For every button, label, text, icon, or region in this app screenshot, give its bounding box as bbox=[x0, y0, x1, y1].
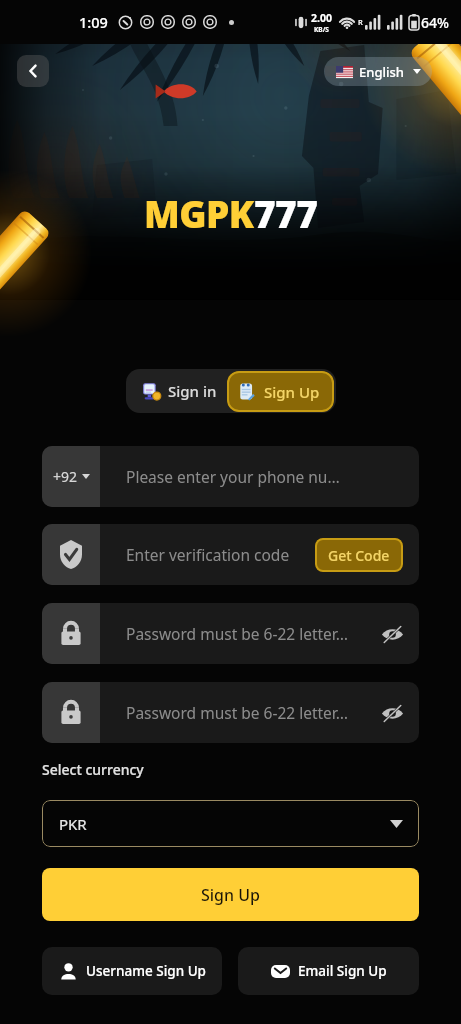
staticText: +92 bbox=[53, 467, 78, 486]
button[interactable]: PKR bbox=[59, 800, 403, 847]
button[interactable]: English bbox=[336, 57, 421, 86]
staticText: Sign Up bbox=[201, 884, 260, 906]
staticText: MGPK bbox=[144, 188, 254, 238]
staticText: 1:09 bbox=[79, 12, 108, 32]
staticText: Username Sign Up bbox=[86, 962, 206, 980]
staticText: Password must be 6-22 letter… bbox=[126, 702, 349, 723]
staticText: KB/S bbox=[314, 25, 329, 34]
button[interactable]: Back bbox=[17, 55, 49, 87]
button[interactable]: Sign Up bbox=[42, 868, 419, 921]
button[interactable]: Show password bbox=[378, 699, 406, 727]
staticText: 2.00 bbox=[311, 11, 332, 25]
staticText: Get Code bbox=[328, 546, 390, 565]
staticText: PKR bbox=[59, 814, 87, 834]
button[interactable]: Username Sign Up bbox=[42, 947, 222, 995]
staticText: Email Sign Up bbox=[298, 962, 387, 980]
staticText: Password must be 6-22 letter… bbox=[126, 623, 349, 644]
staticText: Sign in bbox=[168, 381, 217, 401]
button[interactable]: +92 bbox=[42, 446, 100, 507]
button[interactable]: Email Sign Up bbox=[238, 947, 419, 995]
button[interactable]: Show password bbox=[378, 620, 406, 648]
staticText: Select currency bbox=[42, 760, 144, 779]
staticText: Enter verification code bbox=[126, 544, 290, 565]
button[interactable]: Sign Up bbox=[238, 371, 320, 412]
staticText: 64% bbox=[421, 13, 449, 32]
staticText: Please enter your phone nu… bbox=[126, 466, 340, 487]
staticText: 777 bbox=[254, 188, 318, 238]
button[interactable]: Get Code bbox=[328, 538, 390, 572]
staticText: English bbox=[359, 63, 404, 81]
button[interactable]: Sign in bbox=[142, 369, 217, 413]
staticText: Sign Up bbox=[264, 382, 320, 402]
staticText: R bbox=[358, 17, 363, 27]
